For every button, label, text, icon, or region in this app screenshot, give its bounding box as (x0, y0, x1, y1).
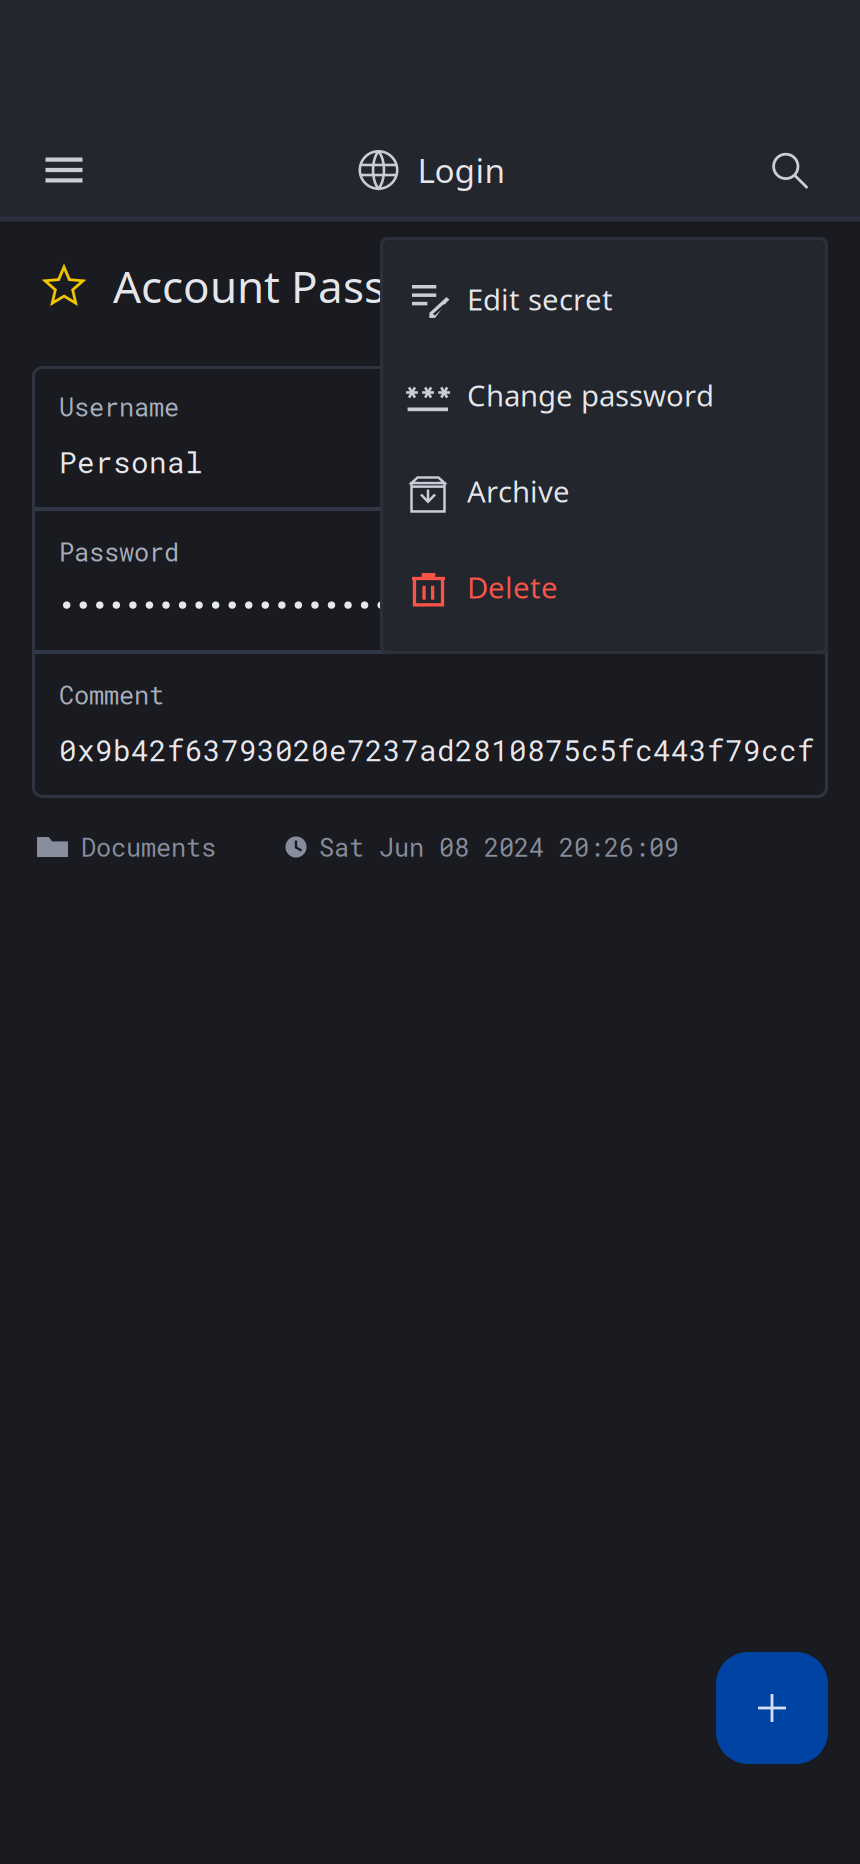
staticText: Username (59, 390, 179, 423)
button[interactable]: Edit secret (380, 251, 828, 347)
staticText: Delete (467, 567, 558, 606)
staticText: Archive (467, 471, 570, 510)
staticText: Personal (59, 442, 203, 481)
staticText: 0x9b42f63793020e7237ad2810875c5fc443f79c… (59, 730, 815, 769)
staticText: Comment (59, 678, 164, 711)
button[interactable]: Delete (380, 539, 828, 635)
staticText: Sat Jun 08 2024 20:26:09 (319, 830, 679, 864)
staticText: Login (417, 148, 505, 192)
staticText: Documents (81, 830, 216, 864)
button[interactable]: Change password (380, 347, 828, 443)
staticText: Password (59, 535, 179, 568)
staticText: Edit secret (467, 279, 613, 318)
staticText: Account Password (113, 257, 491, 315)
staticText: Change password (467, 375, 714, 414)
button[interactable]: Archive (380, 443, 828, 539)
button[interactable]: Search (743, 124, 835, 216)
button[interactable]: Menu (18, 124, 110, 216)
button[interactable]: Add secret (716, 1652, 828, 1764)
